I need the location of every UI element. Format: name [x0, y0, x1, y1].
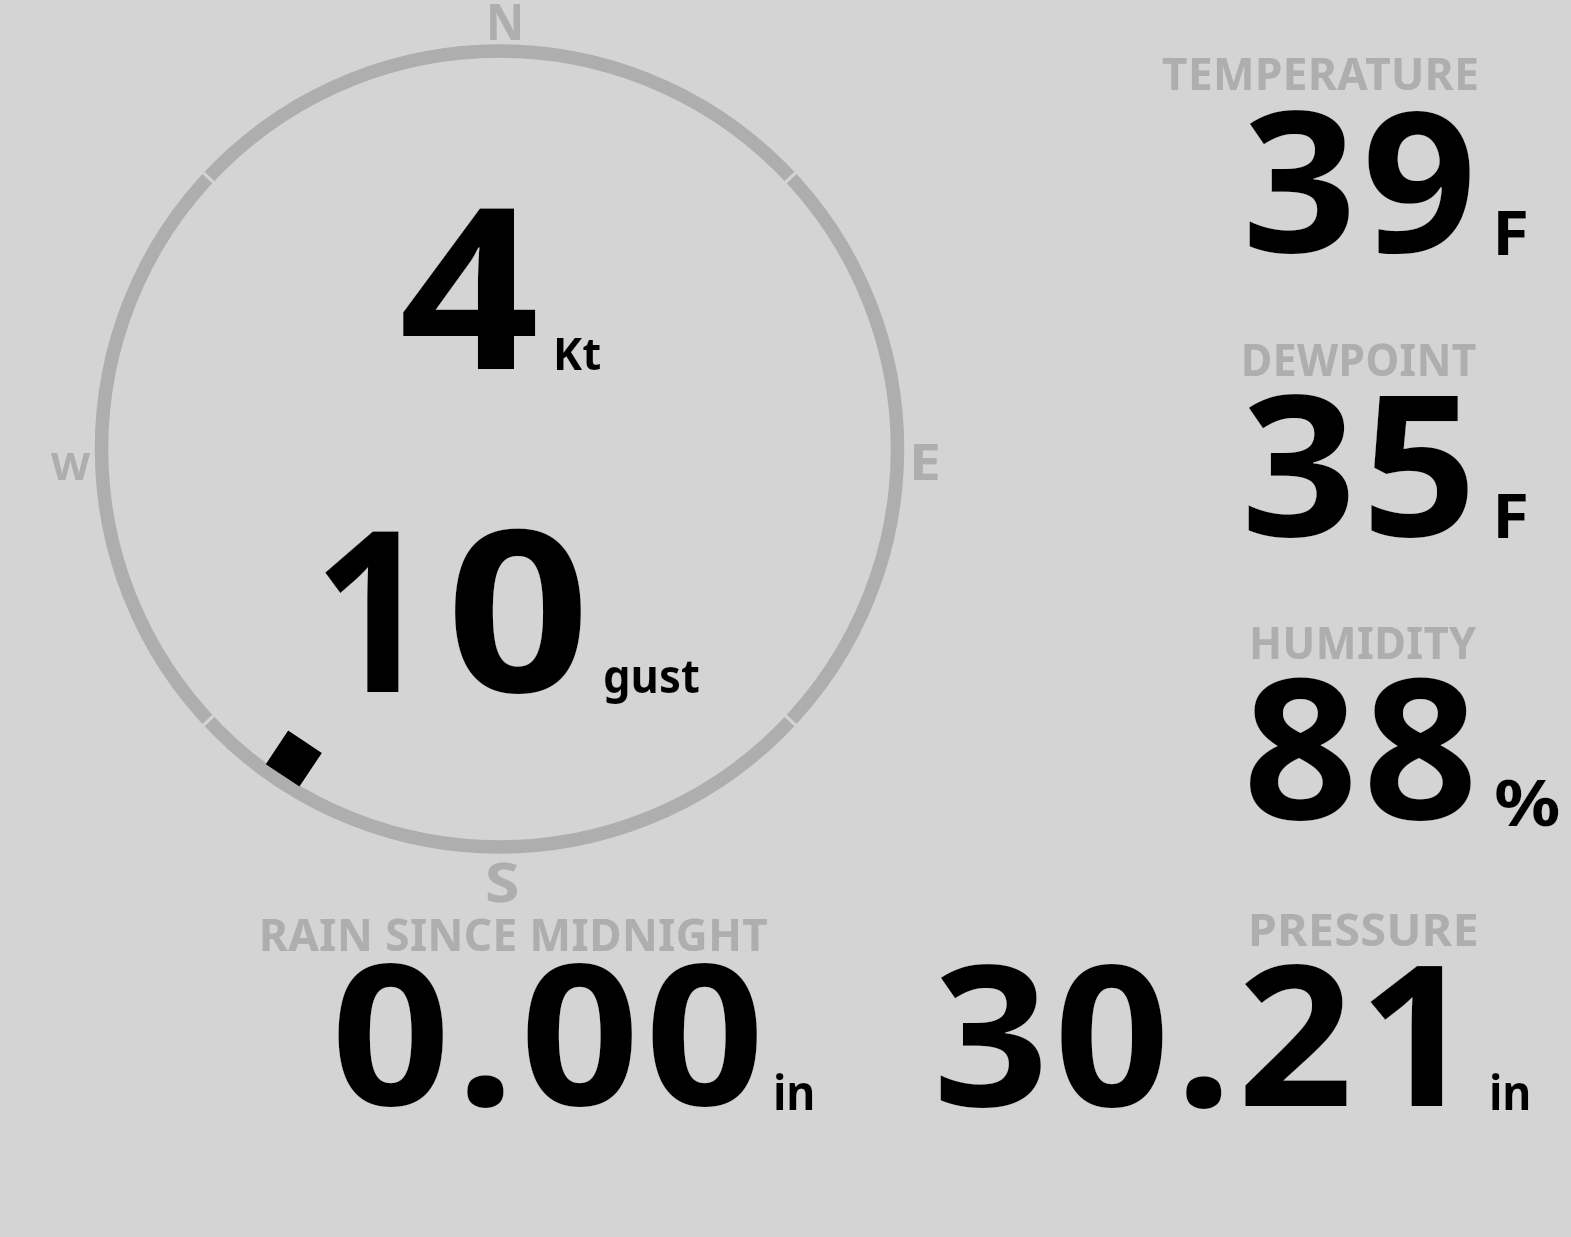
staticText: 30.21 — [933, 898, 1479, 1164]
staticText: 0 — [446, 451, 590, 757]
button[interactable]: Temperature 39 degrees Fahrenheit — [1140, 30, 1560, 270]
staticText: in — [773, 1059, 816, 1124]
button[interactable]: Dewpoint 35 degrees Fahrenheit — [1140, 315, 1560, 555]
button[interactable]: Pressure 30.21 inches — [900, 890, 1550, 1120]
staticText: 1 — [313, 451, 432, 757]
staticText: Kt — [553, 323, 602, 383]
staticText: 0.00 — [331, 897, 770, 1163]
staticText: N — [486, 0, 524, 55]
button[interactable]: Rain since midnight 0.00 inches — [240, 890, 830, 1120]
button[interactable]: Wind 4 knots gusting 10, direction south… — [95, 45, 905, 855]
staticText: F — [1492, 473, 1530, 556]
staticText: TEMPERATURE — [1162, 43, 1480, 103]
staticText: 88 — [1243, 611, 1484, 877]
button[interactable]: Humidity 88 percent — [1140, 598, 1560, 838]
staticText: PRESSURE — [1248, 899, 1480, 959]
staticText: in — [1489, 1059, 1532, 1124]
staticText: F — [1492, 190, 1530, 273]
staticText: 39 — [1242, 44, 1483, 310]
staticText: % — [1494, 758, 1561, 845]
staticText: 4 — [399, 128, 540, 434]
staticText: HUMIDITY — [1249, 612, 1477, 672]
staticText: 35 — [1241, 328, 1483, 594]
staticText: RAIN SINCE MIDNIGHT — [259, 904, 769, 964]
staticText: W — [51, 439, 90, 491]
staticText: E — [909, 427, 941, 495]
staticText: S — [485, 845, 520, 917]
staticText: gust — [603, 644, 701, 707]
staticText: DEWPOINT — [1241, 329, 1477, 389]
